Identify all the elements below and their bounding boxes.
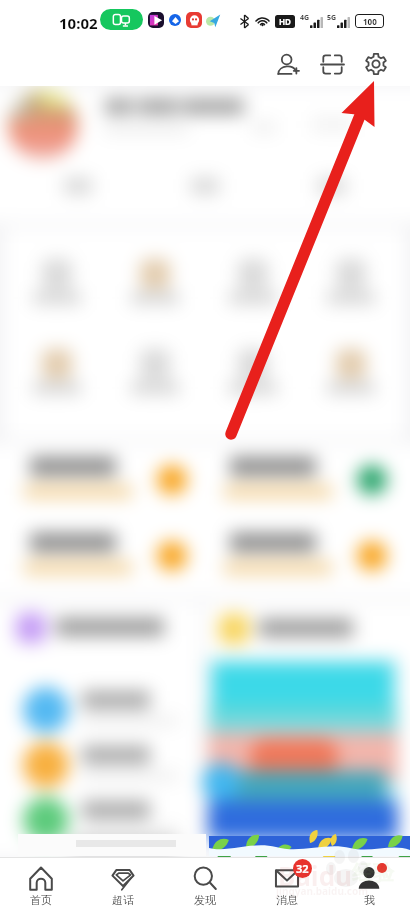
button[interactable]: Scan QR code (310, 42, 354, 86)
staticText: 消息 (276, 893, 298, 907)
staticText: jingyan.baidu.com (276, 884, 368, 898)
staticText: 我 (364, 893, 375, 907)
button[interactable]: Add friend (266, 42, 310, 86)
staticText: 超话 (112, 893, 134, 907)
button[interactable]: Settings (354, 42, 398, 86)
button[interactable]: 32 (246, 858, 328, 914)
staticText: 首页 (30, 893, 52, 907)
staticText: 10:02 (59, 13, 98, 33)
staticText: HD (279, 16, 291, 27)
button[interactable]: 发现 (164, 858, 246, 914)
staticText: Baidu (278, 858, 352, 893)
button[interactable]: 超话 (82, 858, 164, 914)
staticText: 经验 (352, 860, 394, 886)
staticText: 发现 (194, 893, 216, 907)
button[interactable]: 首页 (0, 858, 82, 914)
staticText: 32 (296, 861, 309, 876)
staticText: 5G (327, 13, 337, 23)
staticText: 4G (300, 13, 310, 23)
staticText: 100 (363, 16, 377, 27)
button[interactable]: 我 (328, 858, 410, 914)
